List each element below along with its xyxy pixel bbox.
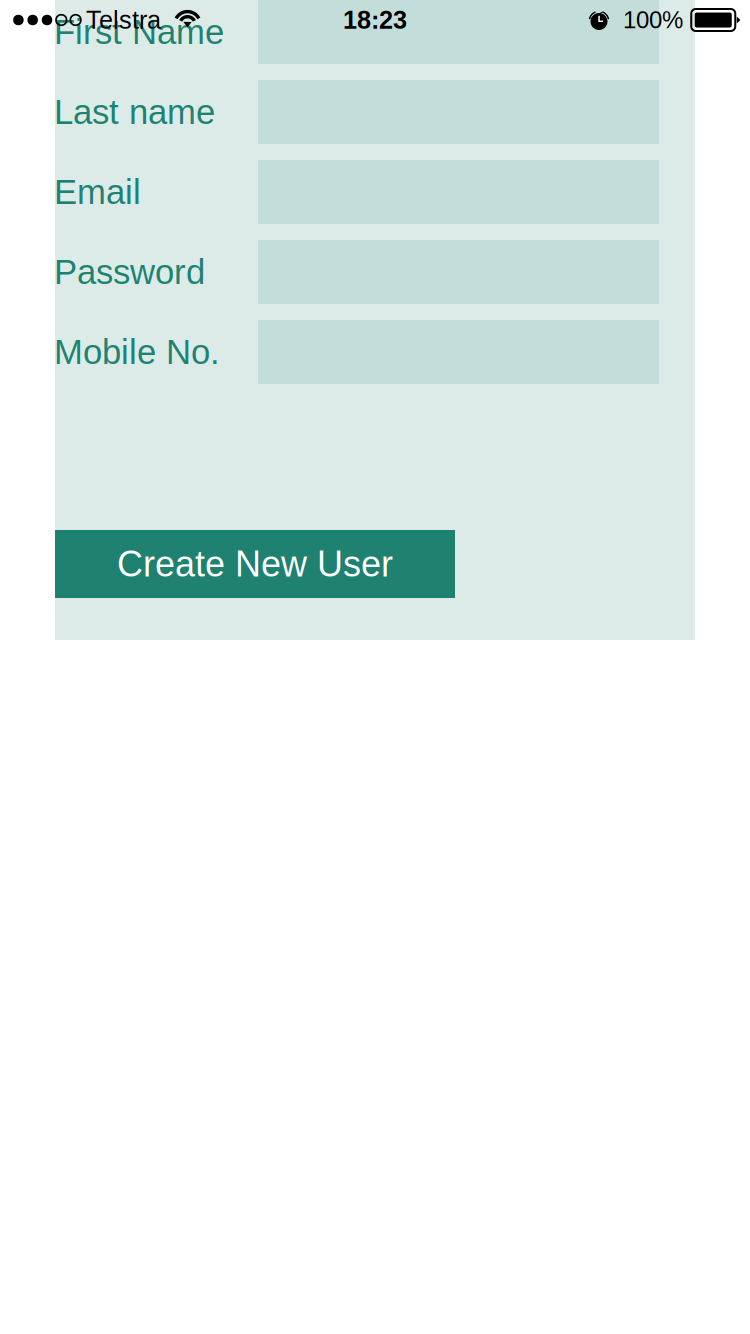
staticText: Email xyxy=(54,173,141,211)
staticText: Telstra xyxy=(86,6,161,34)
staticText: 100% xyxy=(623,7,683,33)
staticText: Password xyxy=(54,253,205,291)
staticText: Mobile No. xyxy=(54,333,220,371)
staticText: Last name xyxy=(54,93,215,131)
button[interactable]: First Name xyxy=(258,0,659,64)
staticText: 18:23 xyxy=(343,6,407,34)
staticText: First Name xyxy=(54,13,224,51)
button[interactable]: Create New User xyxy=(55,530,455,598)
staticText: Create New User xyxy=(117,544,393,584)
